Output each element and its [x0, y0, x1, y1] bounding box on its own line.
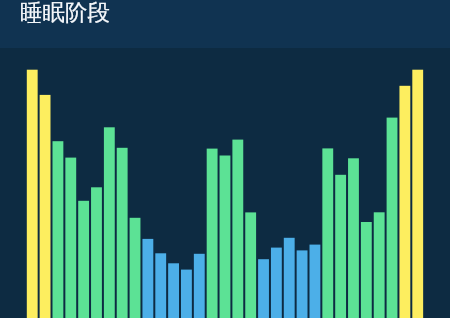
- button[interactable]: 睡眠阶段: [0, 0, 450, 48]
- staticText: 睡眠阶段: [20, 0, 110, 26]
